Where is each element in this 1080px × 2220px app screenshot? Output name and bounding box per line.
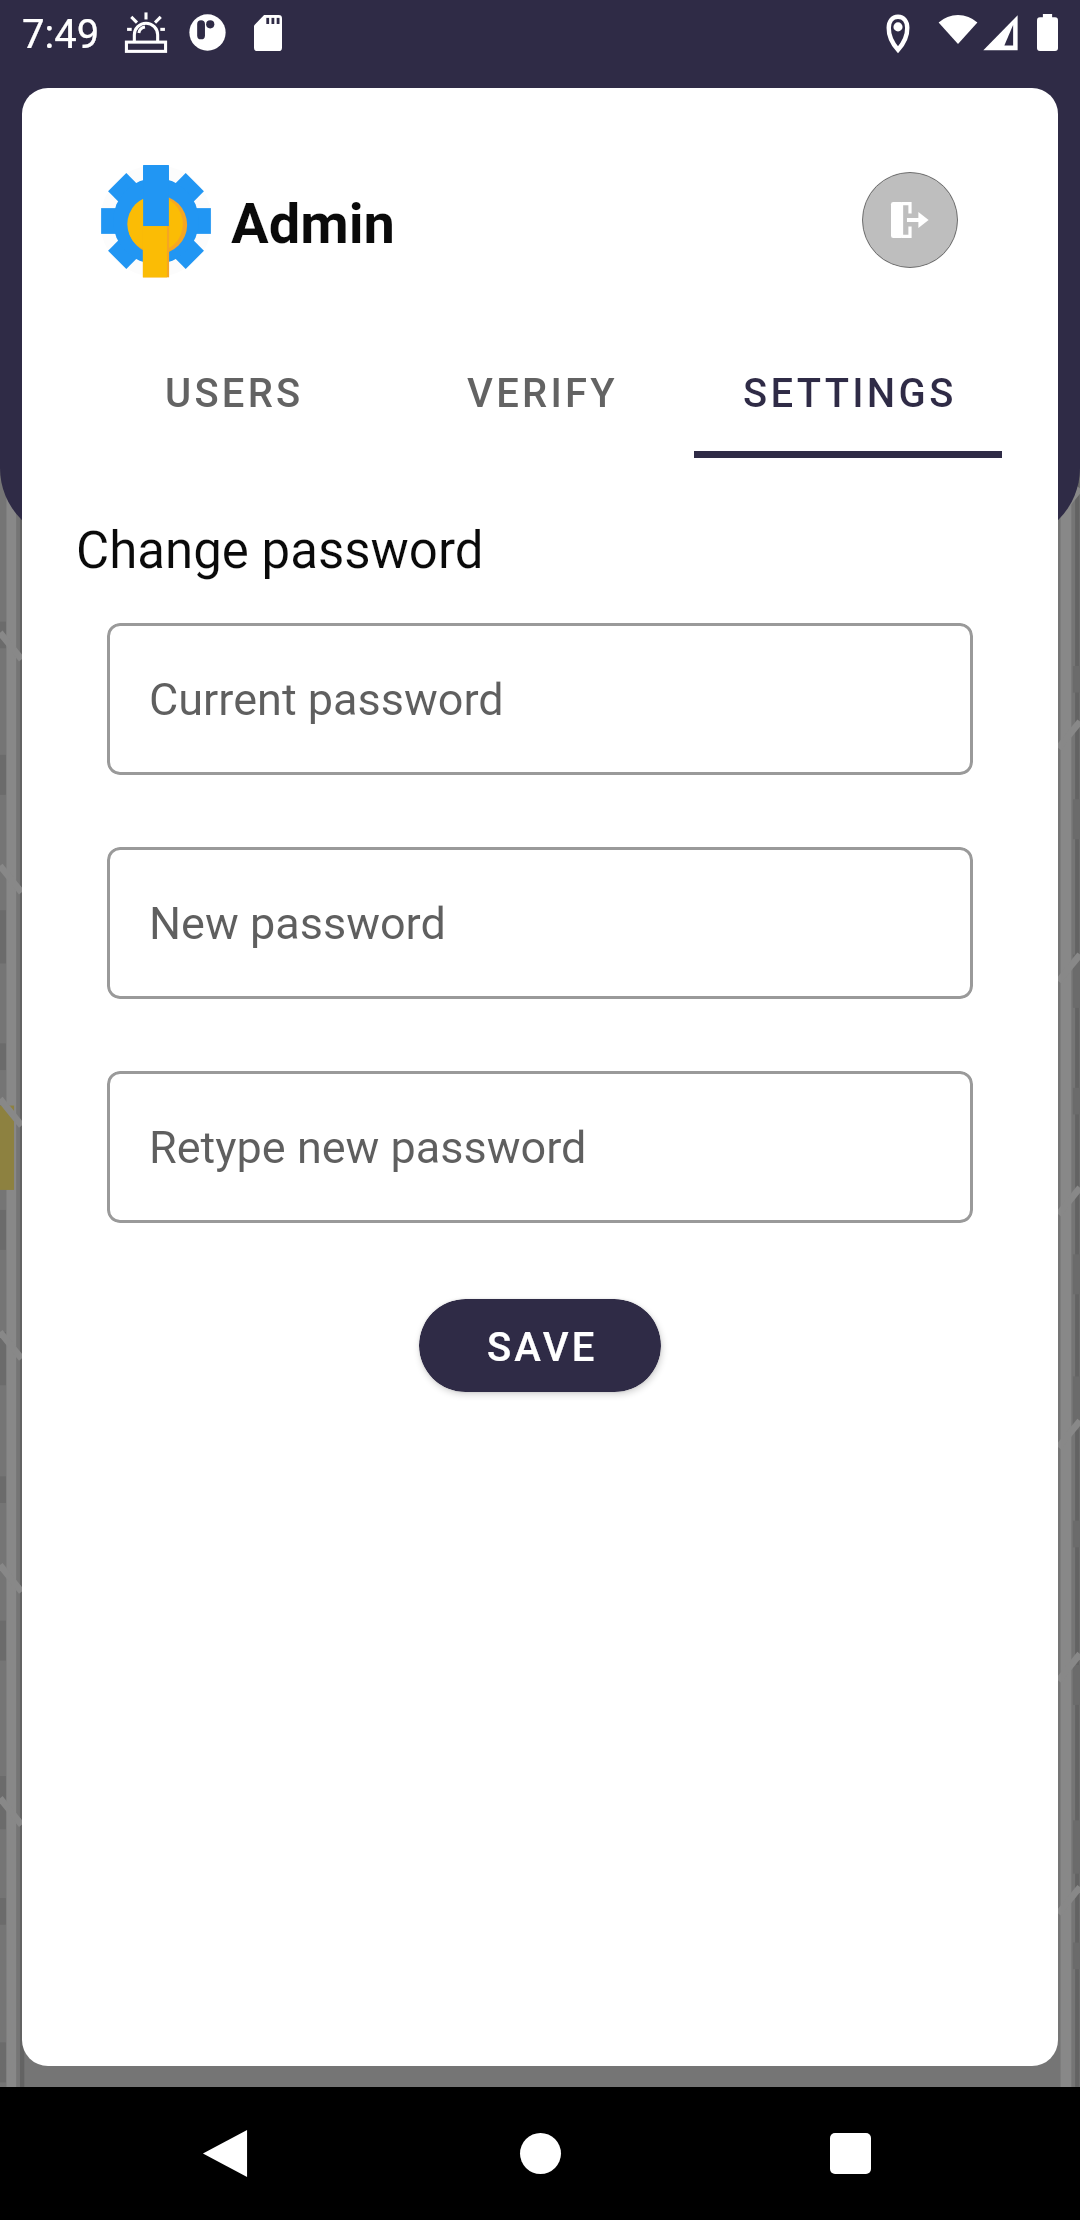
button[interactable]: SETTINGS: [694, 360, 1002, 458]
staticText: 7:49: [22, 11, 100, 58]
staticText: Change password: [76, 521, 484, 581]
button[interactable]: Retype new password: [107, 1071, 973, 1223]
button[interactable]: VERIFY: [386, 360, 694, 458]
button[interactable]: USERS: [78, 360, 386, 458]
button[interactable]: Current password: [107, 623, 973, 775]
staticText: Current password: [149, 673, 504, 726]
button[interactable]: Back: [167, 2087, 283, 2220]
button[interactable]: SAVE: [419, 1299, 661, 1392]
staticText: USERS: [165, 370, 304, 417]
staticText: VERIFY: [467, 370, 618, 417]
button[interactable]: Log out: [862, 172, 958, 268]
staticText: New password: [149, 897, 446, 950]
button[interactable]: New password: [107, 847, 973, 999]
staticText: SAVE: [487, 1324, 598, 1371]
button[interactable]: Home: [482, 2087, 598, 2220]
staticText: SETTINGS: [743, 370, 957, 417]
staticText: Admin: [231, 191, 395, 257]
staticText: Retype new password: [149, 1121, 587, 1174]
button[interactable]: Recent apps: [792, 2087, 908, 2220]
